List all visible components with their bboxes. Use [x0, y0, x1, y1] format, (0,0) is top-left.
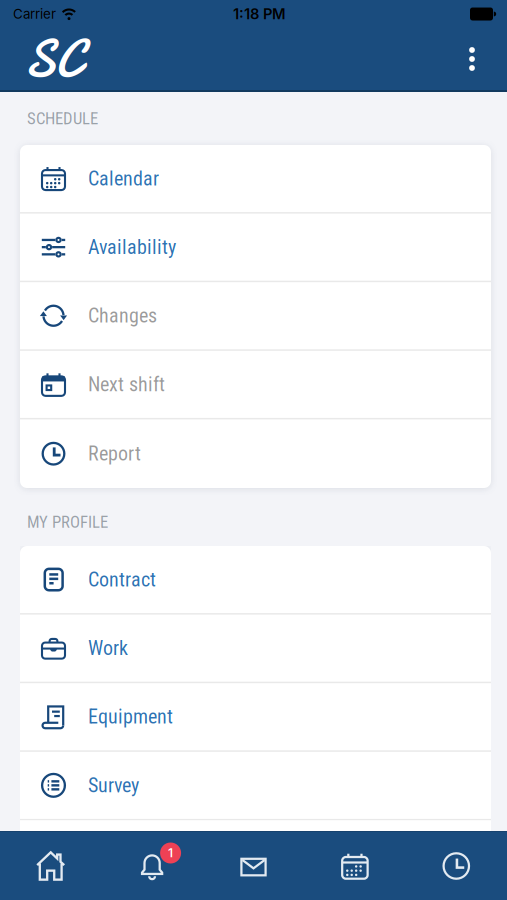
- button[interactable]: Survey: [20, 752, 491, 819]
- staticText: Calendar: [88, 167, 159, 190]
- button[interactable]: Calendar: [304, 832, 406, 900]
- staticText: Contract: [88, 568, 156, 591]
- staticText: Survey: [88, 774, 139, 797]
- button[interactable]: Changes: [20, 282, 491, 349]
- button[interactable]: Notifications: [101, 832, 203, 900]
- staticText: Carrier: [13, 6, 56, 22]
- staticText: Changes: [88, 304, 157, 327]
- staticText: Report: [88, 442, 141, 465]
- button[interactable]: More options: [448, 47, 507, 71]
- button[interactable]: Availability: [20, 214, 491, 281]
- staticText: Equipment: [88, 705, 173, 728]
- button[interactable]: Next shift: [20, 351, 491, 418]
- button[interactable]: Messages: [203, 832, 304, 900]
- button[interactable]: Contract: [20, 546, 491, 613]
- button[interactable]: Work: [20, 615, 491, 682]
- staticText: Availability: [88, 235, 176, 259]
- staticText: Next shift: [88, 373, 165, 396]
- button[interactable]: Time: [406, 832, 507, 900]
- button[interactable]: Home: [0, 832, 101, 900]
- staticText: SCHEDULE: [27, 109, 98, 128]
- staticText: Work: [88, 636, 128, 660]
- staticText: SC: [24, 22, 82, 96]
- button[interactable]: Equipment: [20, 683, 491, 750]
- staticText: 1:18 PM: [233, 5, 286, 23]
- button[interactable]: Calendar: [20, 145, 491, 212]
- button[interactable]: Report: [20, 419, 491, 488]
- staticText: MY PROFILE: [27, 512, 108, 532]
- staticText: 1: [168, 846, 173, 860]
